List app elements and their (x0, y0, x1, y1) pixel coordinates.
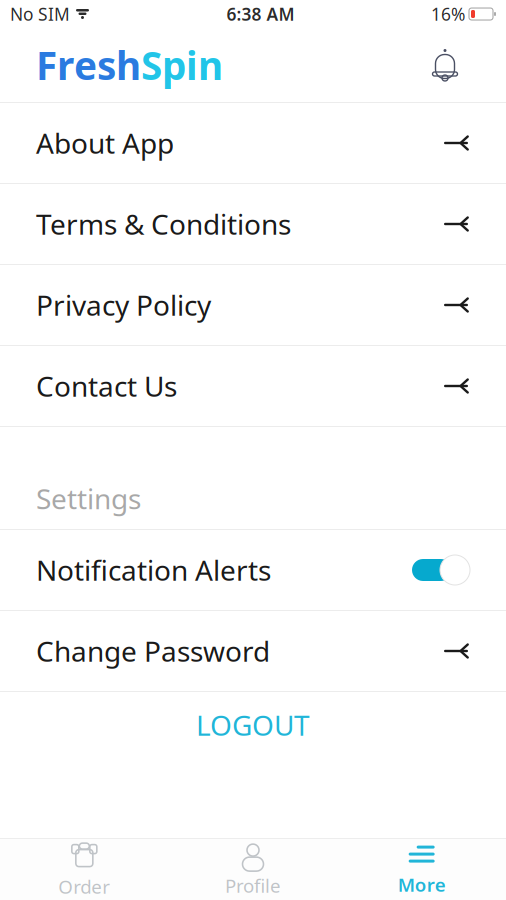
button[interactable]: Profile (169, 838, 337, 900)
button[interactable]: Terms & Conditions (0, 184, 506, 265)
staticText: Change Password (36, 632, 270, 670)
staticText: Order (58, 874, 110, 899)
button[interactable]: Notifications (420, 40, 470, 90)
staticText: Notification Alerts (36, 551, 271, 589)
button[interactable]: Contact Us (0, 346, 506, 427)
button[interactable]: Notification Alerts toggle, on (412, 554, 470, 586)
staticText: LOGOUT (196, 706, 310, 744)
button[interactable]: LOGOUT (0, 692, 506, 758)
staticText: Privacy Policy (36, 286, 211, 324)
button[interactable]: Change Password (0, 611, 506, 692)
button[interactable]: Privacy Policy (0, 265, 506, 346)
staticText: Fresh (36, 39, 141, 91)
staticText: Spin (141, 39, 223, 91)
button[interactable]: About App (0, 103, 506, 184)
staticText: Terms & Conditions (36, 205, 291, 243)
staticText: More (398, 872, 446, 897)
staticText: 6:38 AM (226, 2, 294, 25)
staticText: Contact Us (36, 367, 177, 405)
staticText: 16% (431, 2, 465, 25)
staticText: Settings (36, 480, 141, 517)
staticText: No SIM (10, 2, 70, 25)
staticText: Profile (225, 873, 281, 898)
button[interactable]: More (337, 838, 506, 900)
button[interactable]: Order (0, 838, 169, 900)
staticText: About App (36, 124, 174, 162)
